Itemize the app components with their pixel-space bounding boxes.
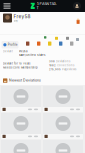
button[interactable]: Deviation (1, 113, 41, 139)
button[interactable]: Deviation (1, 140, 41, 153)
staticText: Frey (13, 20, 17, 23)
staticText: Deviant for 10 Years (3, 62, 30, 65)
staticText: Frey58 (19, 50, 28, 53)
staticText: DEVIANTART (36, 2, 56, 10)
button[interactable]: Profile (1, 41, 18, 48)
staticText: Profile (8, 43, 18, 46)
button[interactable]: Deviation (1, 86, 41, 112)
staticText: Deviant (3, 50, 13, 53)
button[interactable]: Menu (3, 3, 10, 9)
staticText: Pageviews (62, 68, 76, 71)
staticText: Needs Core Membership (3, 66, 38, 69)
staticText: 1882 (49, 64, 56, 67)
staticText: Newest Deviations (9, 78, 41, 82)
button[interactable]: Account (73, 2, 81, 10)
staticText: Deviations (56, 60, 70, 63)
button[interactable]: Llama badge (76, 18, 79, 23)
button[interactable]: Deviation (43, 140, 83, 153)
staticText: Male/United States (19, 53, 45, 57)
button[interactable]: Avatar (3, 13, 12, 22)
staticText: 308 (49, 60, 55, 63)
button[interactable]: Deviation (43, 113, 83, 139)
staticText: 215,905 (49, 68, 61, 71)
staticText: Frey58 (13, 14, 30, 19)
staticText: Collections (57, 64, 74, 67)
button[interactable]: Deviation (43, 86, 83, 112)
